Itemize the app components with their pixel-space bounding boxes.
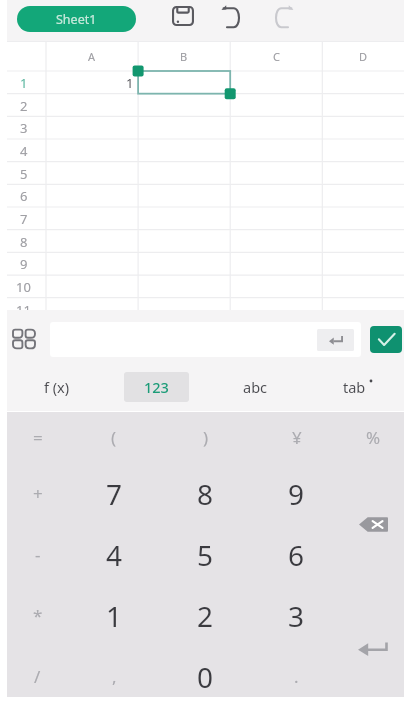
button[interactable]: 3 [251,585,342,646]
button[interactable]: 4 [68,524,160,585]
staticText: 9 [20,255,28,273]
staticText: Sheet1 [56,11,97,28]
button[interactable]: A [46,41,138,71]
button[interactable]: 6 [251,524,342,585]
button[interactable]: abc [206,362,305,411]
button[interactable]: 4 [4,139,43,162]
button[interactable]: Redo [271,4,295,28]
staticText: / [34,665,41,688]
button[interactable]: f (x) [7,362,107,411]
staticText: 6 [288,536,305,574]
button[interactable]: . [251,646,342,702]
staticText: 123 [144,377,169,397]
staticText: 2 [20,97,28,115]
staticText: + [33,482,43,505]
button[interactable]: = [7,412,68,463]
staticText: . [294,665,299,688]
button[interactable]: 123 [107,362,206,411]
button[interactable]: 11 [4,298,43,321]
button[interactable]: Cell functions [10,325,38,353]
staticText: 9 [288,475,305,513]
button[interactable]: 2 [160,585,251,646]
button[interactable]: 1 [4,71,43,94]
button[interactable]: Enter [342,586,404,702]
button[interactable]: B [138,41,230,71]
button[interactable]: % [342,412,404,463]
staticText: - [35,543,41,566]
button[interactable]: * [7,585,68,646]
button[interactable]: 0 [160,646,251,702]
button[interactable]: Save [172,6,194,26]
staticText: 8 [197,475,214,513]
staticText: 6 [20,187,28,205]
button[interactable]: 2 [4,94,43,117]
staticText: 8 [20,233,28,251]
staticText: 3 [20,119,28,137]
button[interactable]: C [230,41,322,71]
button[interactable]: Confirm [370,326,402,353]
button[interactable]: 9 [251,463,342,524]
staticText: ) [203,426,209,449]
button[interactable]: ( [68,412,160,463]
staticText: C [273,49,280,64]
button[interactable]: 8 [4,230,43,253]
button[interactable]: 3 [4,116,43,139]
staticText: 1 [126,74,134,91]
staticText: ¥ [292,426,302,449]
staticText: 5 [20,165,28,183]
staticText: 0 [197,658,214,696]
button[interactable]: 1 [68,585,160,646]
button[interactable]: + [7,463,68,524]
staticText: % [366,426,381,449]
button[interactable]: 5 [160,524,251,585]
staticText: 7 [106,475,123,513]
staticText: abc [243,377,268,397]
staticText: D [359,49,368,64]
staticText: 1 [106,597,123,635]
button[interactable]: 7 [4,207,43,230]
button[interactable]: ) [160,412,251,463]
staticText: 10 [16,278,31,296]
staticText: ( [111,426,117,449]
staticText: A [88,49,96,64]
staticText: * [33,604,43,627]
staticText: 5 [197,536,214,574]
staticText: B [180,49,188,64]
staticText: 7 [20,210,28,228]
button[interactable]: 5 [4,162,43,185]
button[interactable]: Enter [50,322,361,357]
button[interactable]: , [68,646,160,702]
button[interactable]: / [7,646,68,702]
staticText: 2 [197,597,214,635]
staticText: 3 [288,597,305,635]
button[interactable]: Undo [220,4,244,28]
button[interactable]: 9 [4,252,43,275]
button[interactable]: 8 [160,463,251,524]
staticText: 11 [16,301,31,319]
staticText: tab [343,377,366,397]
staticText: 4 [106,536,123,574]
button[interactable]: 7 [68,463,160,524]
button[interactable]: D [322,41,404,71]
staticText: f (x) [44,377,70,397]
button[interactable]: 6 [4,184,43,207]
button[interactable]: 10 [4,275,43,298]
staticText: = [33,426,43,449]
button[interactable]: Sheet1 [17,6,136,32]
button[interactable]: tab [305,362,404,411]
staticText: 4 [20,142,28,160]
button[interactable]: Enter [317,329,354,351]
button[interactable]: ¥ [251,412,342,463]
staticText: 1 [20,74,28,92]
button[interactable]: Backspace [342,463,404,586]
staticText: , [112,665,117,688]
